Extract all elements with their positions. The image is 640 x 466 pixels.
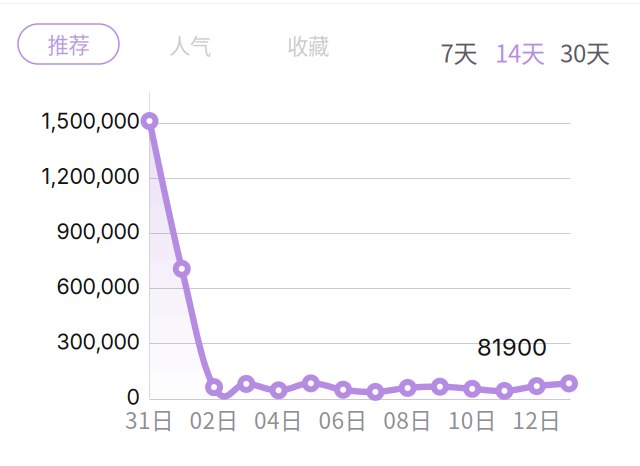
staticText: 7天 bbox=[440, 35, 477, 69]
button[interactable]: 7天 bbox=[437, 37, 481, 67]
staticText: 81900 bbox=[477, 332, 547, 361]
staticText: 人气 bbox=[169, 30, 211, 60]
staticText: 06日 bbox=[319, 403, 368, 435]
staticText: 12日 bbox=[512, 403, 561, 435]
staticText: 31日 bbox=[125, 403, 174, 435]
staticText: 1,200,000 bbox=[41, 163, 139, 189]
button[interactable]: 人气 bbox=[169, 30, 229, 60]
staticText: 0 bbox=[126, 384, 139, 410]
staticText: 推荐 bbox=[47, 29, 89, 59]
staticText: 300,000 bbox=[56, 329, 139, 355]
button[interactable]: 14天 bbox=[491, 37, 549, 67]
button[interactable]: 收藏 bbox=[287, 30, 347, 60]
button[interactable]: 推荐 bbox=[18, 24, 119, 64]
staticText: 600,000 bbox=[56, 274, 139, 299]
staticText: 14天 bbox=[495, 35, 545, 69]
staticText: 10日 bbox=[448, 403, 497, 435]
staticText: 1,500,000 bbox=[41, 108, 139, 134]
staticText: 收藏 bbox=[287, 30, 329, 60]
staticText: 30天 bbox=[560, 35, 610, 69]
staticText: 900,000 bbox=[56, 218, 139, 244]
staticText: 04日 bbox=[254, 403, 303, 435]
button[interactable]: 30天 bbox=[556, 37, 614, 67]
staticText: 02日 bbox=[189, 403, 238, 435]
staticText: 08日 bbox=[383, 403, 432, 435]
